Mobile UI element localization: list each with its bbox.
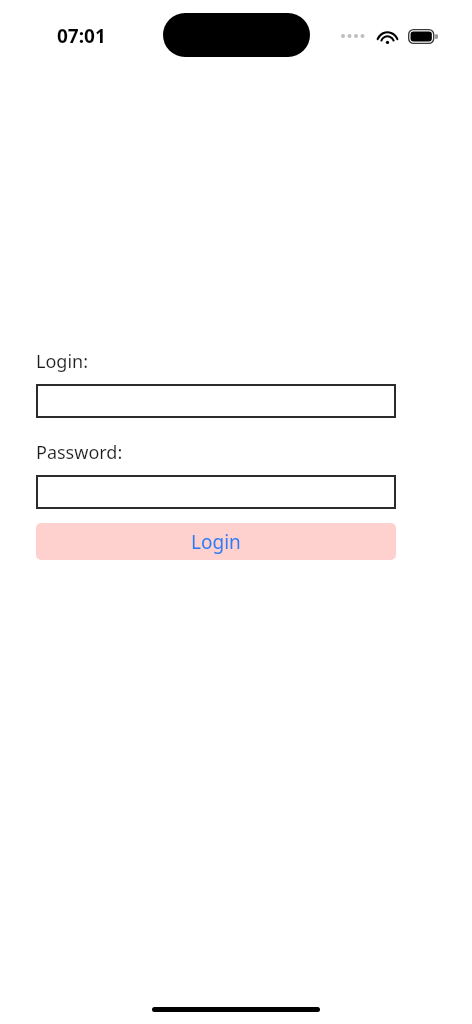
button[interactable]: Login (36, 523, 396, 560)
button[interactable]: Password input field (36, 475, 396, 509)
staticText: Password: (36, 440, 123, 465)
staticText: Login: (36, 349, 88, 374)
staticText: Login (191, 529, 241, 555)
staticText: 07:01 (57, 23, 106, 49)
button[interactable]: Login input field (36, 384, 396, 418)
